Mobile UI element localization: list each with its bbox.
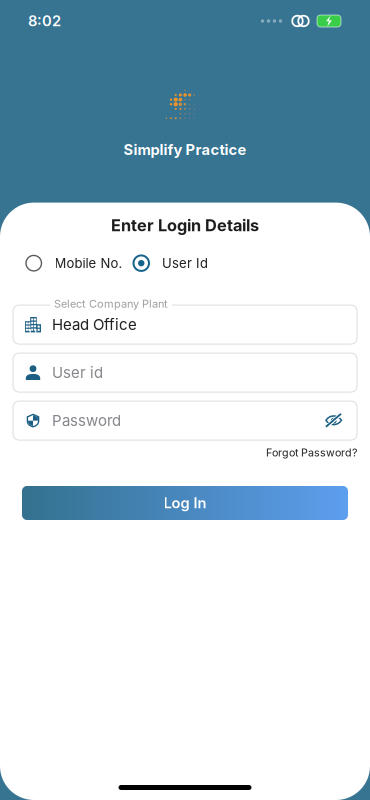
staticText: 8:02 (28, 12, 61, 30)
button[interactable]: Mobile No. (26, 255, 122, 271)
staticText: Head Office (52, 316, 137, 334)
button[interactable]: User Id (133, 255, 208, 271)
button[interactable]: User id (13, 353, 357, 392)
button[interactable]: Log In (22, 486, 348, 520)
button[interactable]: Head Office (13, 305, 357, 344)
staticText: Enter Login Details (111, 216, 259, 235)
button[interactable]: Password (13, 401, 357, 440)
staticText: Forgot Password? (266, 446, 357, 459)
staticText: Password (52, 412, 121, 430)
staticText: User Id (162, 255, 208, 271)
staticText: User id (52, 364, 103, 382)
staticText: Simplify Practice (123, 141, 246, 158)
staticText: Log In (163, 494, 206, 512)
staticText: Mobile No. (54, 255, 122, 271)
button[interactable]: Forgot Password? (266, 446, 357, 459)
staticText: Select Company Plant (54, 297, 168, 310)
